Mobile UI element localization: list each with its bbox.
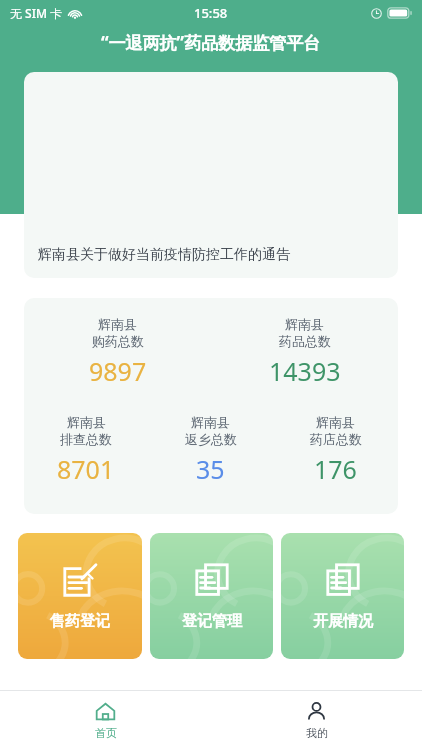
staticText: 15:58 <box>194 4 228 22</box>
button[interactable]: 辉南县关于做好当前疫情防控工作的通告 <box>24 72 398 278</box>
button[interactable]: 首页 <box>0 691 211 750</box>
staticText: 辉南县关于做好当前疫情防控工作的通告 <box>38 246 290 264</box>
staticText: 我的 <box>306 726 328 740</box>
staticText: 35 <box>196 452 225 486</box>
button[interactable]: 辉南县 <box>273 414 398 486</box>
staticText: 返乡总数 <box>185 431 237 447</box>
staticText: 售药登记 <box>50 612 110 631</box>
button[interactable]: 开展情况 <box>281 533 404 659</box>
button[interactable]: 辉南县 <box>148 414 273 486</box>
staticText: 辉南县 <box>67 414 106 430</box>
staticText: 无 SIM 卡 <box>10 5 63 21</box>
staticText: 排查总数 <box>60 431 112 447</box>
staticText: “一退两抗”药品数据监管平台 <box>101 31 321 54</box>
staticText: 辉南县 <box>285 316 324 332</box>
button[interactable]: 登记管理 <box>150 533 273 659</box>
button[interactable]: 辉南县 <box>211 316 398 388</box>
button[interactable]: 辉南县 <box>24 414 148 486</box>
staticText: 8701 <box>57 452 115 486</box>
staticText: 药品总数 <box>279 333 331 349</box>
button[interactable]: 售药登记 <box>18 533 142 659</box>
staticText: 辉南县 <box>98 316 137 332</box>
button[interactable]: 我的 <box>211 691 422 750</box>
staticText: 药店总数 <box>310 431 362 447</box>
staticText: 176 <box>314 452 357 486</box>
staticText: 首页 <box>95 726 117 740</box>
staticText: 开展情况 <box>313 612 373 631</box>
staticText: 辉南县 <box>191 414 230 430</box>
button[interactable]: 辉南县 <box>24 316 211 388</box>
staticText: 辉南县 <box>316 414 355 430</box>
staticText: 购药总数 <box>92 333 144 349</box>
staticText: 登记管理 <box>182 612 242 631</box>
staticText: 14393 <box>269 354 341 388</box>
staticText: 9897 <box>89 354 147 388</box>
